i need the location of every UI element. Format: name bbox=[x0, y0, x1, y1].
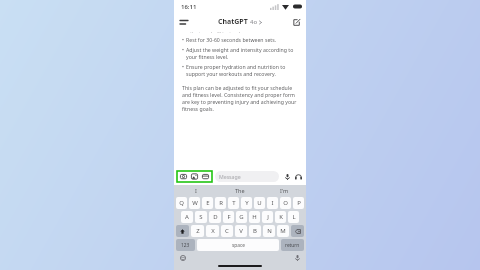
staticText: P bbox=[297, 199, 301, 207]
staticText: This plan can be adjusted to fit your sc… bbox=[182, 84, 298, 112]
staticText: Rest for 30-60 seconds between sets. bbox=[186, 36, 277, 43]
staticText: G bbox=[239, 213, 244, 221]
staticText: S bbox=[199, 213, 203, 221]
button[interactable]: T bbox=[228, 197, 239, 209]
staticText: W bbox=[192, 199, 198, 207]
staticText: H bbox=[252, 213, 257, 221]
button[interactable]: K bbox=[275, 211, 286, 223]
button[interactable]: N bbox=[263, 225, 275, 237]
button[interactable]: Camera bbox=[179, 172, 188, 181]
staticText: U bbox=[257, 199, 262, 207]
button[interactable]: P bbox=[293, 197, 304, 209]
staticText: K bbox=[279, 213, 283, 221]
staticText: ChatGPT bbox=[218, 17, 248, 27]
staticText: Q bbox=[179, 199, 184, 207]
staticText: • bbox=[182, 36, 184, 43]
button[interactable]: space bbox=[197, 239, 279, 251]
button[interactable]: D bbox=[209, 211, 221, 223]
staticText: • bbox=[182, 46, 184, 53]
button[interactable]: M bbox=[277, 225, 289, 237]
button[interactable]: ChatGPT bbox=[218, 17, 262, 27]
button[interactable]: J bbox=[262, 211, 273, 223]
staticText: 4o bbox=[250, 18, 258, 26]
staticText: N bbox=[267, 227, 272, 235]
staticText: C bbox=[225, 227, 229, 235]
button[interactable]: A bbox=[181, 211, 193, 223]
staticText: • bbox=[182, 63, 184, 70]
staticText: space bbox=[232, 242, 245, 249]
staticText: I'm bbox=[280, 187, 289, 194]
staticText: I bbox=[271, 199, 274, 207]
button[interactable]: S bbox=[195, 211, 207, 223]
staticText: I bbox=[195, 187, 197, 194]
staticText: A bbox=[185, 213, 189, 221]
staticText: M bbox=[280, 227, 286, 235]
staticText: F bbox=[227, 213, 231, 221]
button[interactable]: U bbox=[254, 197, 265, 209]
button[interactable]: H bbox=[249, 211, 260, 223]
button[interactable]: C bbox=[221, 225, 233, 237]
button[interactable]: B bbox=[249, 225, 261, 237]
button[interactable]: W bbox=[189, 197, 200, 209]
button[interactable]: Files bbox=[201, 172, 210, 181]
button[interactable]: I'm bbox=[262, 185, 306, 196]
staticText: V bbox=[239, 227, 243, 235]
button[interactable]: E bbox=[202, 197, 213, 209]
button[interactable]: F bbox=[223, 211, 234, 223]
button[interactable]: Emoji bbox=[178, 253, 188, 263]
button[interactable]: G bbox=[236, 211, 247, 223]
button[interactable]: Backspace bbox=[291, 225, 304, 237]
button[interactable]: Message bbox=[215, 171, 279, 182]
staticText: return bbox=[285, 242, 300, 249]
button[interactable]: L bbox=[288, 211, 299, 223]
button[interactable]: 123 bbox=[176, 239, 195, 251]
button[interactable]: R bbox=[215, 197, 226, 209]
button[interactable]: New chat bbox=[290, 16, 302, 28]
button[interactable]: Voice input bbox=[282, 172, 292, 182]
staticText: Ensure proper hydration and nutrition to… bbox=[186, 63, 298, 77]
button[interactable]: I bbox=[267, 197, 278, 209]
staticText: J bbox=[267, 213, 269, 221]
button[interactable]: Q bbox=[176, 197, 187, 209]
staticText: The bbox=[235, 187, 245, 194]
button[interactable]: I bbox=[174, 185, 218, 196]
button[interactable]: Z bbox=[191, 225, 204, 237]
staticText: Adjust the weight and intensity accordin… bbox=[186, 46, 298, 60]
staticText: on the treadmill instead. bbox=[182, 30, 242, 33]
staticText: Z bbox=[196, 227, 200, 235]
button[interactable]: Shift bbox=[176, 225, 189, 237]
button[interactable]: X bbox=[206, 225, 219, 237]
staticText: T bbox=[232, 199, 236, 207]
staticText: B bbox=[253, 227, 257, 235]
button[interactable]: O bbox=[280, 197, 291, 209]
button[interactable]: V bbox=[235, 225, 247, 237]
staticText: E bbox=[206, 199, 210, 207]
button[interactable]: Photos bbox=[190, 172, 199, 181]
button[interactable]: return bbox=[281, 239, 304, 251]
button[interactable]: Y bbox=[241, 197, 252, 209]
button[interactable]: Voice mode bbox=[293, 172, 303, 182]
staticText: L bbox=[292, 213, 296, 221]
staticText: X bbox=[211, 227, 215, 235]
staticText: R bbox=[219, 199, 223, 207]
staticText: D bbox=[213, 213, 218, 221]
staticText: Y bbox=[245, 199, 249, 207]
button[interactable]: Dictation bbox=[292, 253, 302, 263]
staticText: 16:11 bbox=[181, 3, 197, 11]
staticText: 123 bbox=[181, 242, 190, 249]
button[interactable]: The bbox=[218, 185, 262, 196]
button[interactable]: Menu bbox=[178, 16, 190, 28]
staticText: Message bbox=[219, 173, 241, 180]
staticText: O bbox=[283, 199, 288, 207]
